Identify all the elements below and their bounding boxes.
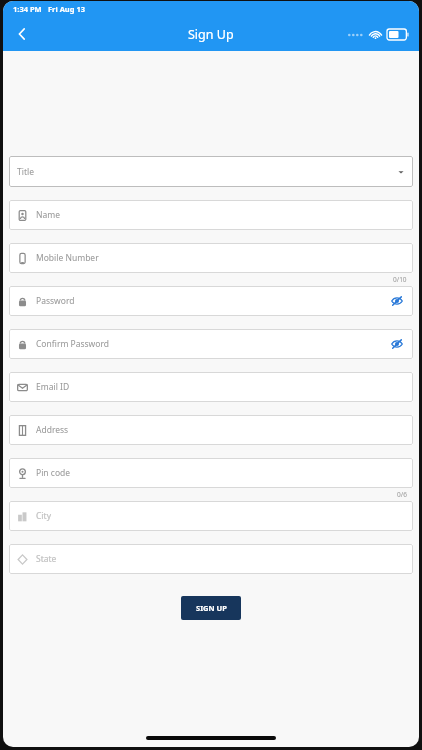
staticText: 0/10 [393, 275, 407, 284]
staticText: Title [17, 166, 34, 178]
staticText: Mobile Number [36, 252, 99, 264]
staticText: 1:34 PM [13, 4, 42, 14]
button[interactable]: Confirm Password [9, 329, 413, 359]
staticText: Pin code [36, 467, 71, 479]
button[interactable]: Title [9, 156, 413, 187]
staticText: SIGN UP [196, 603, 227, 613]
button[interactable]: Password [9, 286, 413, 316]
button[interactable]: Name [9, 200, 413, 230]
button[interactable]: Back [7, 19, 37, 49]
button[interactable]: Address [9, 415, 413, 445]
button[interactable]: Pin code [9, 458, 413, 488]
staticText: Email ID [36, 381, 70, 393]
staticText: Confirm Password [36, 338, 109, 350]
button[interactable]: City [9, 501, 413, 531]
staticText: City [36, 510, 51, 522]
button[interactable]: State [9, 544, 413, 574]
button[interactable]: Toggle password visibility [389, 336, 405, 352]
staticText: Fri Aug 13 [48, 4, 85, 14]
button[interactable]: Toggle password visibility [389, 293, 405, 309]
staticText: Address [36, 424, 69, 436]
staticText: 0/6 [397, 490, 407, 499]
button[interactable]: SIGN UP [181, 596, 241, 620]
staticText: Sign Up [188, 26, 234, 43]
staticText: Password [36, 295, 75, 307]
button[interactable]: Mobile Number [9, 243, 413, 273]
staticText: State [36, 553, 57, 565]
staticText: Name [36, 209, 60, 221]
button[interactable]: Email ID [9, 372, 413, 402]
